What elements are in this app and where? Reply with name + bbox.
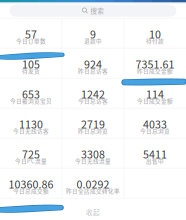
staticText: 105 <box>22 56 40 72</box>
staticText: 114 <box>146 86 164 102</box>
staticText: 昨日总浏览 <box>78 127 108 135</box>
button[interactable]: 10360.86 <box>0 168 62 198</box>
button[interactable]: 57 <box>0 18 62 48</box>
button[interactable]: 0.0292 <box>62 168 124 198</box>
staticText: 10 <box>149 26 161 42</box>
button[interactable]: 4033 <box>124 108 186 138</box>
staticText: 57 <box>25 26 37 42</box>
staticText: 1242 <box>81 86 105 102</box>
button[interactable]: 725 <box>0 138 62 168</box>
staticText: 5411 <box>143 146 167 162</box>
button[interactable]: 1242 <box>62 78 124 108</box>
button[interactable]: 9 <box>62 18 124 48</box>
button[interactable]: 114 <box>124 78 186 108</box>
staticText: 3308 <box>81 146 105 162</box>
staticText: 今日无线访客 <box>13 127 49 135</box>
button[interactable]: 搜索 <box>9 5 176 17</box>
button[interactable]: 653 <box>0 78 62 108</box>
staticText: 今日被浏览宝贝 <box>10 97 52 105</box>
staticText: 收起 <box>86 207 100 217</box>
staticText: 退款中 <box>84 37 102 45</box>
button[interactable]: 7351.61 <box>124 48 186 78</box>
staticText: 出售中 <box>146 157 164 165</box>
button[interactable]: 924 <box>62 48 124 78</box>
staticText: 9 <box>90 26 96 42</box>
staticText: 4033 <box>143 116 167 132</box>
button[interactable]: 5411 <box>124 138 186 168</box>
staticText: 今日总浏览 <box>140 127 170 135</box>
button[interactable]: 收起 <box>0 204 186 220</box>
staticText: 924 <box>84 56 102 72</box>
staticText: 10360.86 <box>8 176 53 192</box>
staticText: 昨日总访客 <box>78 67 108 75</box>
staticText: 昨日成交金额 <box>137 67 173 75</box>
staticText: 今日订单数 <box>16 37 46 45</box>
staticText: 今日总成交额 <box>13 187 49 195</box>
button[interactable]: 1130 <box>0 108 62 138</box>
button[interactable]: 3308 <box>62 138 124 168</box>
staticText: 今日成交金额 <box>137 97 173 105</box>
staticText: 今日PC流量 <box>15 157 47 165</box>
staticText: 653 <box>22 86 40 102</box>
staticText: 725 <box>22 146 40 162</box>
button[interactable]: 105 <box>0 48 62 78</box>
staticText: 0.0292 <box>76 176 109 192</box>
staticText: 待发货 <box>22 67 40 75</box>
staticText: 今日无线流量 <box>75 157 111 165</box>
staticText: 7351.61 <box>136 56 175 72</box>
staticText: 1130 <box>19 116 43 132</box>
staticText: 搜索 <box>90 6 104 15</box>
button[interactable]: 2719 <box>62 108 124 138</box>
button[interactable]: 10 <box>124 18 186 48</box>
staticText: 今日总访客 <box>78 97 108 105</box>
staticText: 待付款 <box>146 37 164 45</box>
staticText: 2719 <box>81 116 105 132</box>
staticText: 昨日全店成交转化率 <box>66 187 120 195</box>
